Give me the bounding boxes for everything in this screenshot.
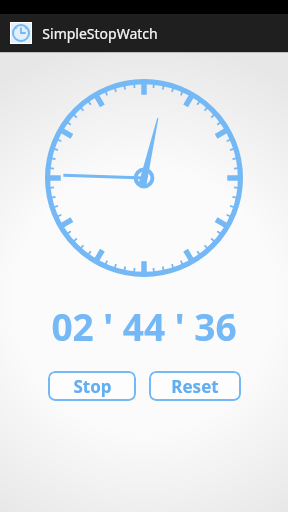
staticText: 02 ' 44 ' 36 — [51, 301, 237, 351]
staticText: Reset — [171, 375, 219, 398]
staticText: SimpleStopWatch — [42, 24, 158, 43]
staticText: Stop — [73, 375, 112, 398]
other: App icon — [10, 22, 32, 44]
button[interactable]: Stop — [48, 371, 136, 401]
button[interactable]: Reset — [149, 371, 241, 401]
